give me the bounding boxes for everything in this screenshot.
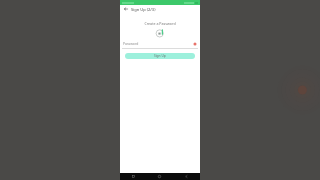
staticText: Password [123,41,139,46]
button[interactable]: Back [123,6,129,12]
staticText: Create a Password [120,21,200,26]
button[interactable]: Password [120,41,200,49]
button[interactable]: Recent apps [120,173,146,180]
button[interactable]: Sign Up [125,53,195,59]
button[interactable]: Show password [193,42,197,46]
button[interactable]: Back [173,173,200,180]
button[interactable]: Home [146,173,173,180]
staticText: Sign Up [154,54,166,58]
staticText: Sign Up (2/3) [131,7,156,12]
